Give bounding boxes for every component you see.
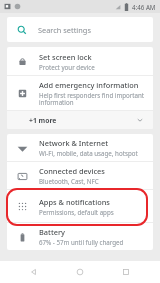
button[interactable]: Connected devices	[7, 162, 153, 189]
staticText: Add emergency information	[39, 80, 139, 90]
staticText: Search settings	[38, 25, 91, 35]
staticText: 4:46 AM	[132, 3, 156, 11]
button[interactable]: Set screen lock	[7, 47, 153, 75]
button[interactable]: Network & Internet	[7, 134, 153, 161]
staticText: Permissions, default apps	[39, 208, 114, 216]
button[interactable]: Recent apps	[114, 261, 138, 283]
staticText: Set screen lock	[39, 52, 92, 62]
staticText: Wi-Fi, mobile, data usage, hotspot	[39, 149, 138, 157]
staticText: Connected devices	[39, 166, 105, 176]
staticText: Network & Internet	[39, 138, 108, 148]
button[interactable]: Battery	[7, 223, 153, 250]
staticText: Bluetooth, Cast, NFC	[39, 177, 99, 185]
staticText: Protect your device	[39, 63, 95, 71]
staticText: Help first responders find important inf…	[39, 91, 145, 107]
staticText: 67% - 57m until fully charged	[39, 238, 124, 246]
button[interactable]: Add emergency information	[7, 76, 153, 110]
staticText: Apps & notifications	[39, 197, 110, 207]
button[interactable]: +1 more	[7, 111, 153, 129]
staticText: Battery	[39, 227, 65, 237]
button[interactable]: Search settings	[7, 17, 153, 42]
button[interactable]: Apps & notifications	[7, 190, 153, 222]
button[interactable]: Back	[22, 261, 46, 283]
button[interactable]: Home	[68, 261, 92, 283]
staticText: +1 more	[29, 116, 57, 125]
